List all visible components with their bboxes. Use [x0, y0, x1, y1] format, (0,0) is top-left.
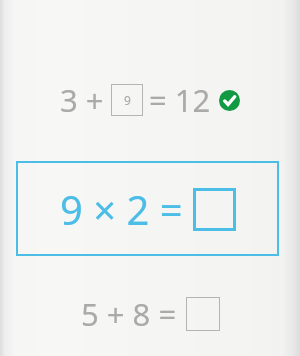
button[interactable]: Correct	[219, 90, 240, 111]
button[interactable]: 3 +	[0, 78, 300, 122]
button[interactable]: Answer input	[193, 188, 236, 231]
staticText: 9 × 2 =	[60, 182, 183, 236]
staticText: 3 +	[60, 79, 104, 121]
button[interactable]: 9 × 2 =	[16, 161, 279, 256]
staticText: 9	[124, 92, 131, 108]
button[interactable]: 5 + 8 =	[0, 292, 300, 336]
staticText: 5 + 8 =	[81, 293, 177, 335]
staticText: = 12	[149, 79, 211, 121]
button[interactable]: Answer input	[186, 297, 220, 331]
